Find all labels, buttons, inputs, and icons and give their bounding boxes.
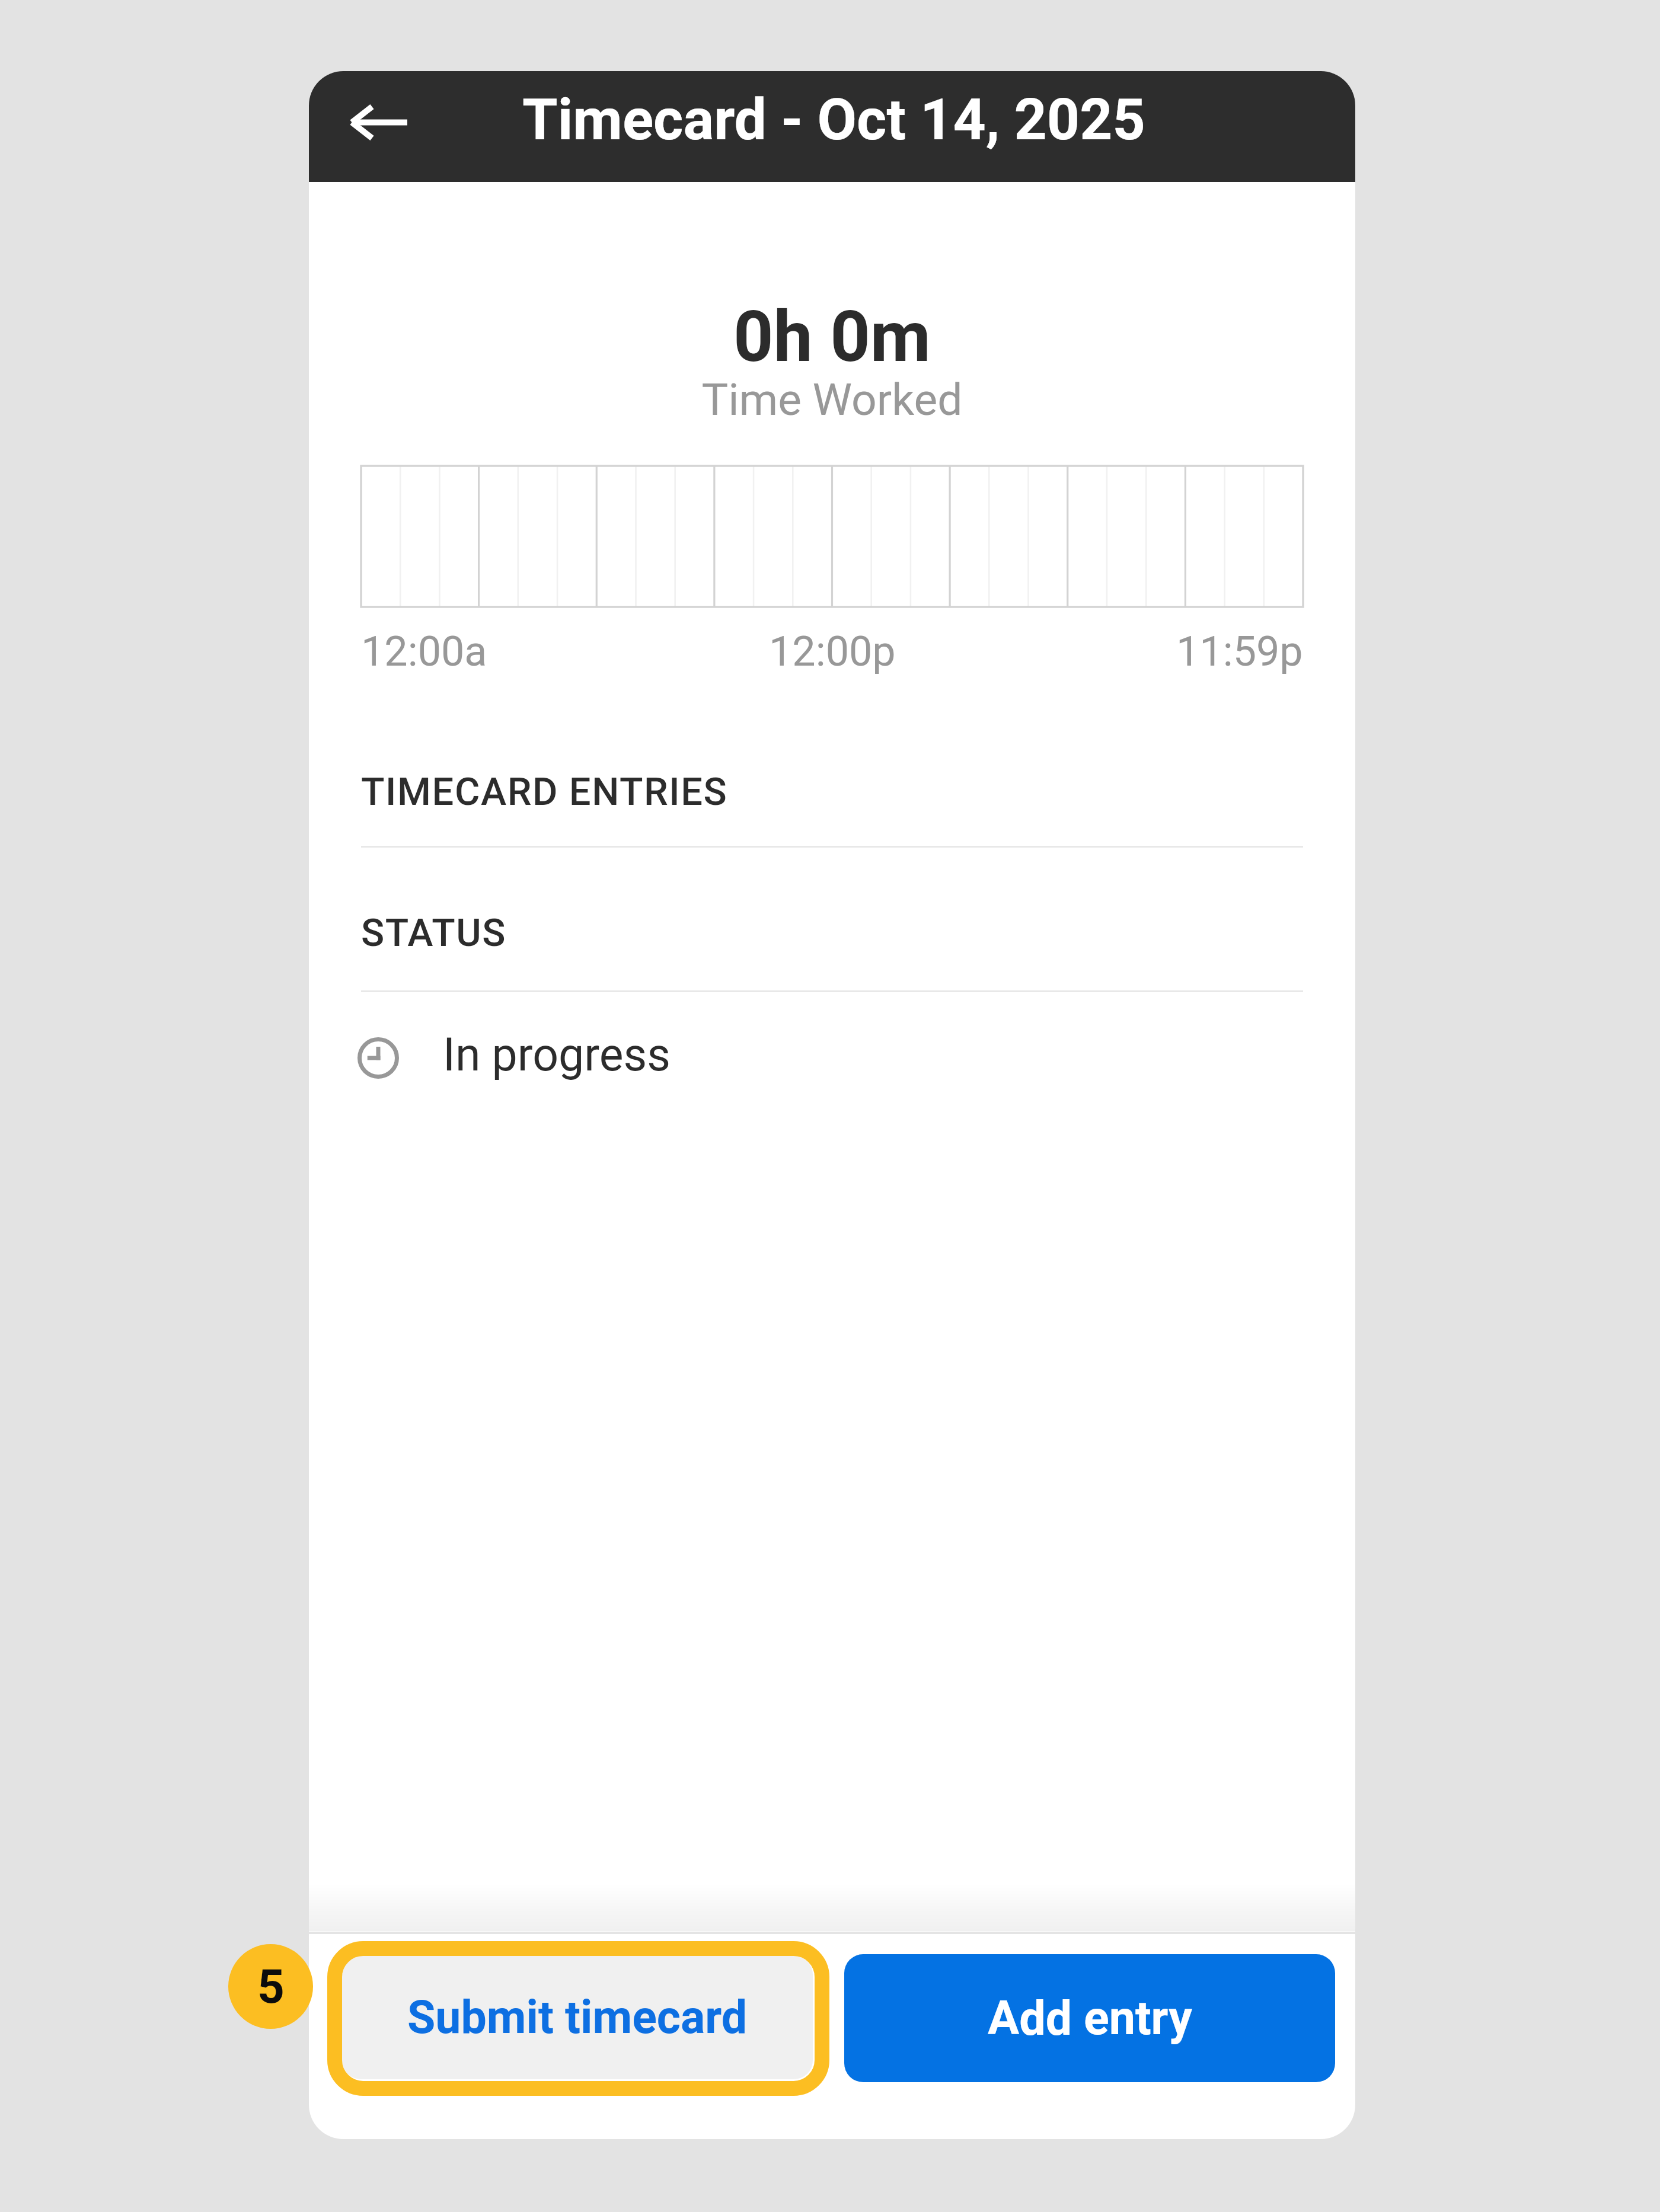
staticText: 12:00p [769,627,896,676]
button[interactable]: In progress [309,1015,1355,1104]
staticText: 11:59p [1176,627,1303,676]
button[interactable]: Submit timecard [342,1956,813,2079]
button[interactable]: Back [330,75,425,170]
staticText: 0h 0m [309,296,1355,378]
staticText: Submit timecard [407,1991,748,2044]
staticText: STATUS [361,910,507,955]
staticText: Time Worked [309,373,1355,426]
staticText: Timecard - Oct 14, 2025 [311,86,1355,153]
button[interactable]: Add entry [844,1954,1335,2082]
staticText: Add entry [988,1991,1192,2046]
staticText: TIMECARD ENTRIES [361,769,728,814]
staticText: 12:00a [361,627,487,676]
staticText: In progress [443,1028,671,1082]
staticText: 5 [257,1959,285,2015]
